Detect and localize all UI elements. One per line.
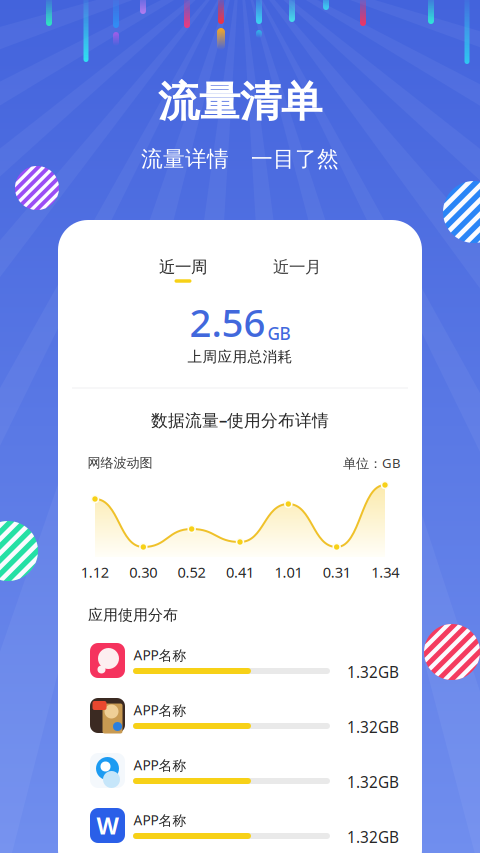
staticText: 近一周	[159, 257, 207, 277]
staticText: GB	[267, 322, 290, 345]
staticText: 1.32GB	[347, 772, 399, 792]
staticText: APP名称	[133, 756, 186, 774]
staticText: 1.32GB	[347, 662, 399, 682]
staticText: 0.52	[178, 562, 206, 582]
staticText: APP名称	[133, 811, 186, 829]
staticText: 数据流量–使用分布详情	[151, 409, 329, 431]
button[interactable]: 近一月	[252, 248, 342, 290]
staticText: APP名称	[133, 646, 186, 664]
staticText: 1.32GB	[347, 827, 399, 847]
button[interactable]: APP名称	[90, 643, 407, 678]
staticText: 0.41	[226, 562, 254, 582]
staticText: 近一月	[273, 257, 321, 277]
button[interactable]: 近一周	[138, 248, 228, 290]
staticText: 单位：GB	[343, 454, 401, 472]
staticText: 1.32GB	[347, 717, 399, 737]
staticText: 应用使用分布	[88, 606, 178, 624]
staticText: APP名称	[133, 701, 186, 719]
staticText: 2.56	[189, 296, 265, 348]
staticText: 1.12	[81, 562, 109, 582]
button[interactable]: W	[90, 808, 407, 843]
staticText: 0.30	[129, 562, 157, 582]
staticText: 1.01	[274, 562, 302, 582]
staticText: 流量清单	[158, 76, 322, 128]
staticText: 网络波动图	[87, 455, 152, 471]
staticText: 1.34	[371, 562, 399, 582]
staticText: 0.31	[323, 562, 351, 582]
button[interactable]: APP名称	[90, 698, 407, 733]
staticText: 上周应用总消耗	[187, 348, 292, 366]
staticText: W	[96, 810, 118, 841]
staticText: 流量详情 一目了然	[141, 145, 339, 173]
button[interactable]: APP名称	[90, 753, 407, 788]
